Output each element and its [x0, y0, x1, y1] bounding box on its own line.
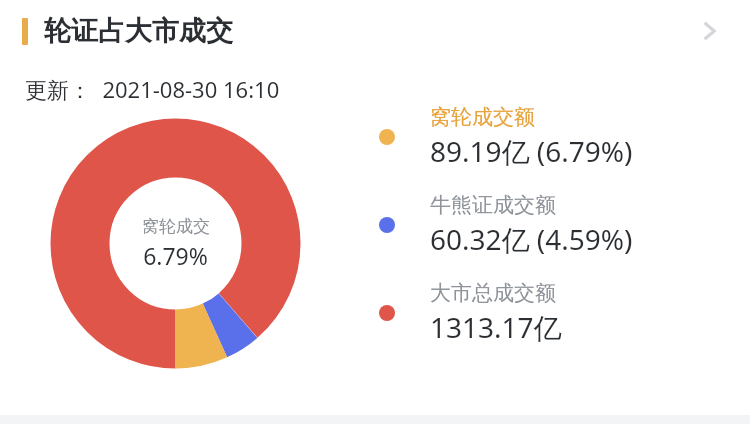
button[interactable]: 牛熊证成交额 — [370, 192, 740, 258]
staticText: 更新： 2021-08-30 16:10 — [25, 74, 280, 104]
staticText: 1313.17亿 — [430, 308, 562, 346]
staticText: 大市总成交额 — [430, 280, 556, 306]
button[interactable]: 轮证占大市成交 — [0, 0, 750, 62]
staticText: 6.79% — [143, 240, 208, 271]
staticText: 窝轮成交额 — [430, 104, 535, 130]
button[interactable]: 窝轮成交额 — [370, 104, 740, 170]
staticText: 轮证占大市成交 — [44, 14, 233, 48]
staticText: 89.19亿 (6.79%) — [430, 132, 633, 170]
button[interactable]: 大市总成交额 — [370, 280, 740, 346]
staticText: 窝轮成交 — [142, 216, 210, 237]
staticText: 牛熊证成交额 — [430, 192, 556, 218]
staticText: 60.32亿 (4.59%) — [430, 220, 633, 258]
button[interactable]: More — [682, 4, 736, 58]
